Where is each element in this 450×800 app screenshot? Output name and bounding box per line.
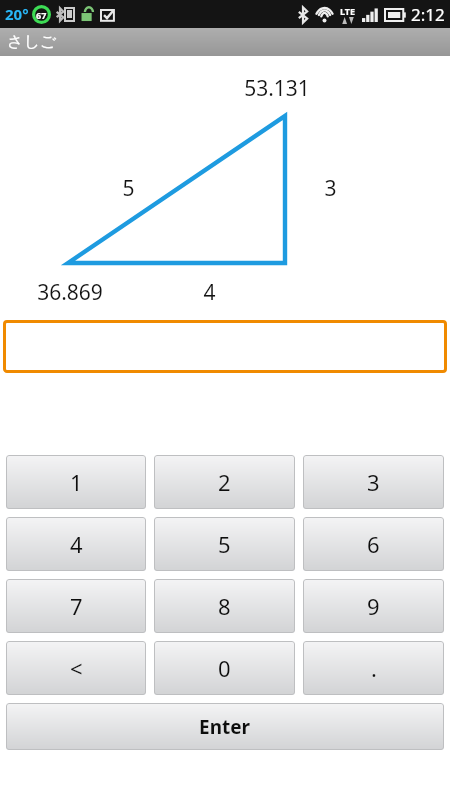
button[interactable]: 5 — [154, 517, 295, 571]
staticText: さしご — [7, 32, 57, 52]
button[interactable]: 6 — [303, 517, 444, 571]
staticText: 1 — [70, 467, 83, 497]
staticText: Enter — [199, 714, 251, 740]
staticText: 20° — [5, 4, 29, 24]
staticText: . — [371, 653, 377, 683]
staticText: 3 — [367, 467, 380, 497]
button[interactable]: 1 — [6, 455, 146, 509]
button[interactable]: 8 — [154, 579, 295, 633]
staticText: 53.131 — [244, 74, 310, 102]
button[interactable]: 2 — [154, 455, 295, 509]
button[interactable]: 0 — [154, 641, 295, 695]
staticText: 4 — [203, 278, 216, 306]
staticText: 4 — [70, 529, 83, 559]
staticText: 67 — [36, 9, 47, 21]
button[interactable] — [3, 320, 447, 373]
staticText: 8 — [218, 591, 231, 621]
staticText: < — [70, 653, 83, 683]
staticText: 3 — [324, 174, 337, 202]
button[interactable]: 7 — [6, 579, 146, 633]
button[interactable]: Enter — [6, 703, 444, 750]
staticText: 9 — [367, 591, 380, 621]
staticText: 0 — [218, 653, 231, 683]
staticText: 5 — [218, 529, 231, 559]
button[interactable]: 4 — [6, 517, 146, 571]
staticText: 2 — [218, 467, 231, 497]
button[interactable]: Decimal point — [303, 641, 444, 695]
staticText: 7 — [70, 591, 83, 621]
button[interactable]: 3 — [303, 455, 444, 509]
button[interactable]: 9 — [303, 579, 444, 633]
staticText: 2:12 — [411, 3, 445, 26]
staticText: LTE — [340, 5, 356, 17]
button[interactable]: Backspace — [6, 641, 146, 695]
staticText: 6 — [367, 529, 380, 559]
staticText: 36.869 — [37, 278, 103, 306]
staticText: 5 — [122, 174, 135, 202]
